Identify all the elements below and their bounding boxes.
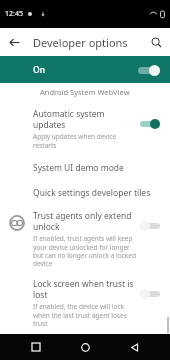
button[interactable]: Back (121, 334, 147, 360)
staticText: Trust agents only extend unlock (33, 210, 132, 232)
staticText: 12:45 (5, 9, 23, 19)
button[interactable]: Home (72, 334, 98, 360)
button[interactable]: Back (0, 28, 28, 56)
staticText: Apply updates when device restarts (33, 132, 117, 150)
button[interactable]: Search (142, 28, 170, 56)
staticText: Lock screen when trust is lost (33, 278, 134, 300)
button[interactable]: Lock screen when trust is lost (0, 273, 170, 333)
staticText: Quick settings developer tiles (33, 187, 151, 199)
button[interactable]: Quick settings developer tiles (0, 180, 170, 205)
staticText: On (33, 64, 45, 76)
button[interactable]: System UI demo mode (0, 155, 170, 180)
staticText: If enabled, the device will lock when th… (33, 302, 127, 328)
button[interactable]: Toggle off (140, 288, 160, 300)
button[interactable]: On (0, 56, 170, 83)
button[interactable]: Toggle off (140, 220, 160, 232)
button[interactable]: Automatic system updates (0, 103, 170, 155)
staticText: Android System WebView (40, 87, 130, 97)
staticText: Automatic system updates (33, 108, 136, 130)
staticText: If enabled, trust agents will keep your … (33, 234, 136, 268)
staticText: Developer options (33, 35, 128, 50)
button[interactable]: Recent apps (23, 334, 49, 360)
button[interactable]: Trust agents only extend unlock (0, 205, 170, 273)
button[interactable]: Toggle on (140, 118, 160, 130)
staticText: System UI demo mode (33, 162, 124, 174)
